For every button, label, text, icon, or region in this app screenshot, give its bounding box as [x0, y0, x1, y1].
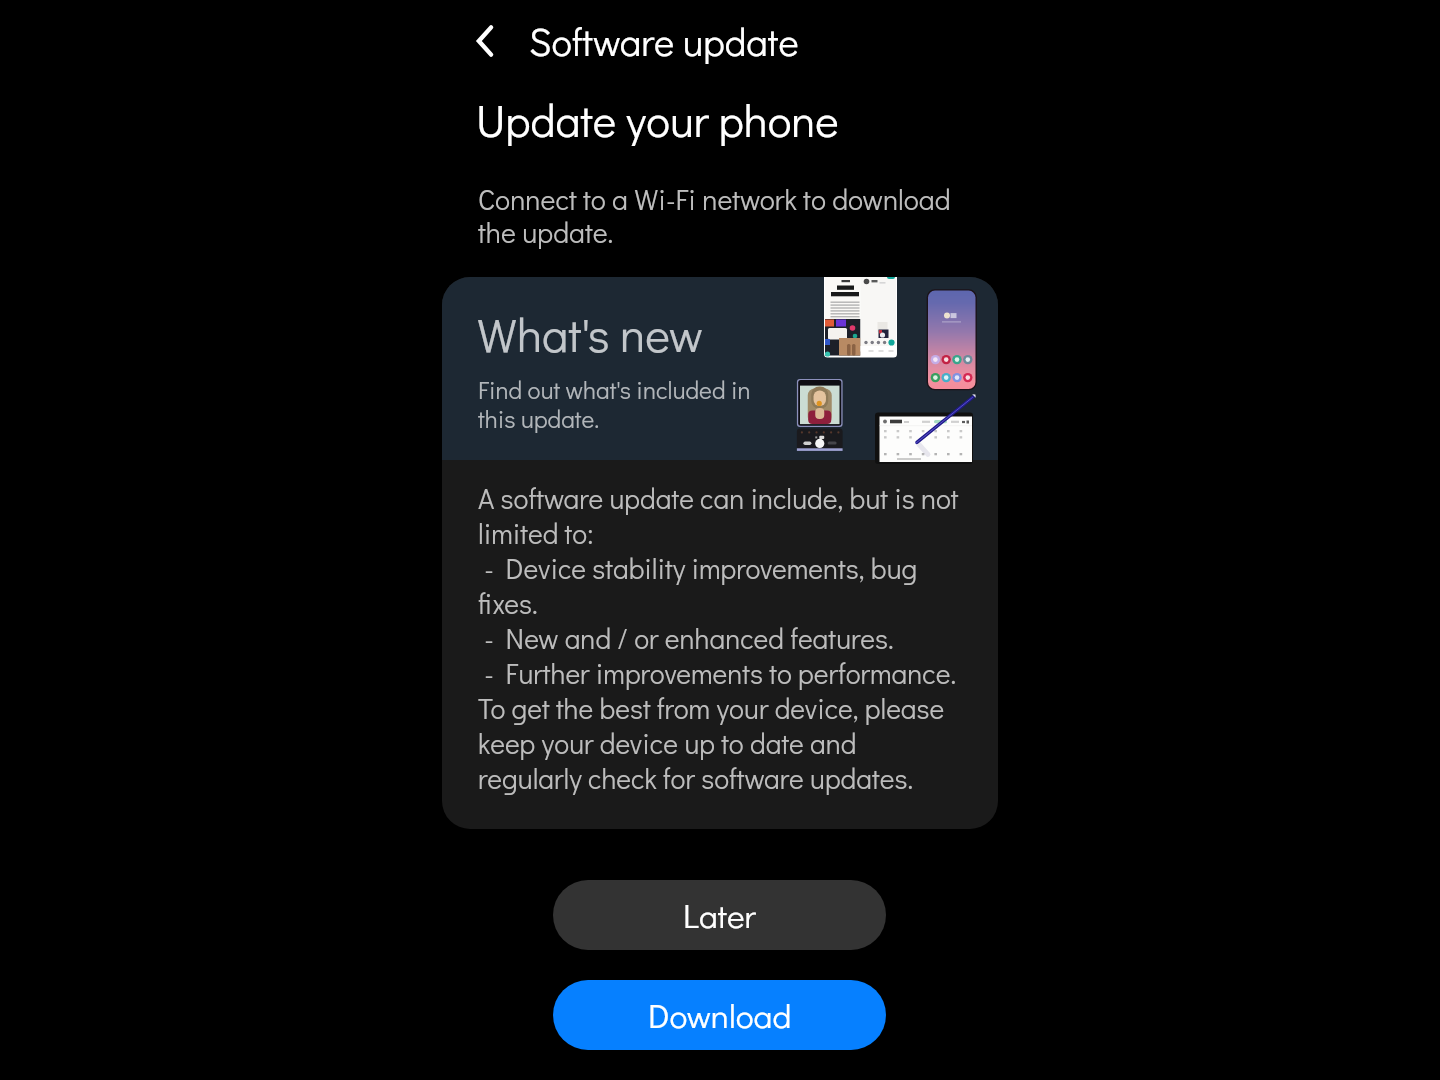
button[interactable]: What's new [442, 277, 998, 460]
staticText: Connect to a Wi-Fi network to download t… [478, 180, 968, 250]
button[interactable]: Back [459, 13, 515, 69]
button[interactable]: Download [553, 980, 886, 1050]
staticText: Later [683, 893, 756, 937]
staticText: Update your phone [476, 90, 839, 148]
staticText: Download [648, 993, 792, 1037]
button[interactable]: Later [553, 880, 886, 950]
staticText: Software update [529, 16, 799, 66]
staticText: A software update can include, but is no… [478, 480, 963, 797]
staticText: Find out what's included in this update. [478, 374, 768, 434]
staticText: What's new [477, 303, 703, 365]
